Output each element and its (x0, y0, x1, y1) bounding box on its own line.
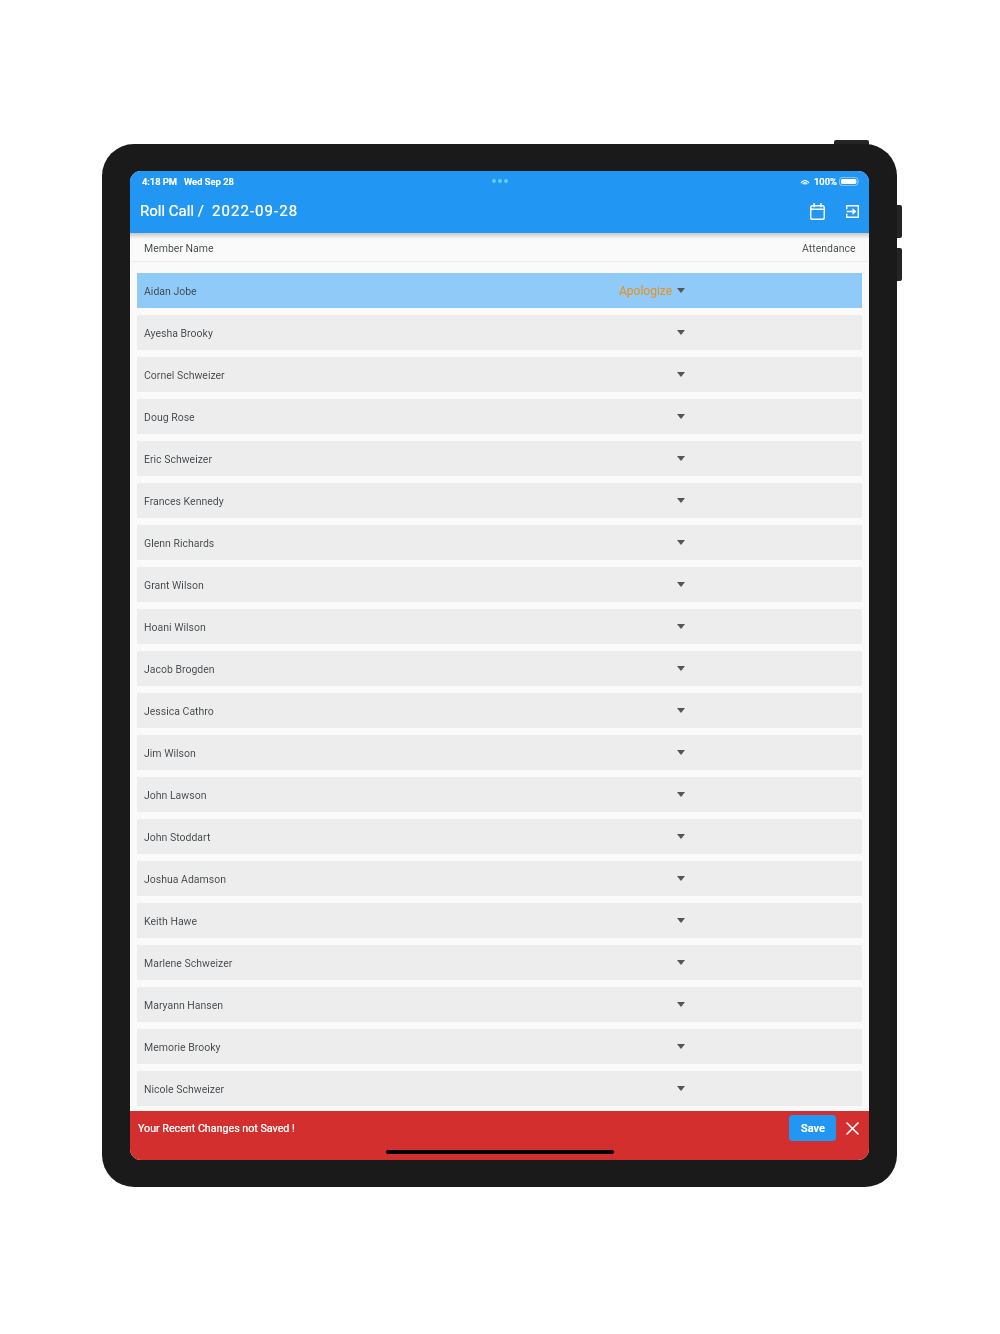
button[interactable]: John Lawson (137, 777, 862, 812)
button[interactable]: John Stoddart (137, 819, 862, 854)
staticText: Grant Wilson (144, 579, 204, 591)
staticText: Your Recent Changes not Saved ! (138, 1122, 295, 1135)
button[interactable]: Calendar (802, 196, 832, 226)
button[interactable]: Jim Wilson (137, 735, 862, 770)
button[interactable]: Select attendance for Hoani Wilson (613, 609, 693, 644)
button[interactable]: Select attendance for Glenn Richards (613, 525, 693, 560)
staticText: Frances Kennedy (144, 495, 224, 507)
button[interactable]: Logout (837, 196, 867, 226)
button[interactable]: Cornel Schweizer (137, 357, 862, 392)
button[interactable]: Ayesha Brooky (137, 315, 862, 350)
staticText: Joshua Adamson (144, 873, 226, 885)
button[interactable]: Grant Wilson (137, 567, 862, 602)
button[interactable]: Select attendance for Keith Hawe (613, 903, 693, 938)
button[interactable]: Glenn Richards (137, 525, 862, 560)
button[interactable]: Joshua Adamson (137, 861, 862, 896)
staticText: Nicole Schweizer (144, 1083, 225, 1095)
button[interactable]: Select attendance for Jacob Brogden (613, 651, 693, 686)
staticText: Member Name (144, 242, 214, 254)
staticText: Eric Schweizer (144, 453, 212, 465)
button[interactable]: Keith Hawe (137, 903, 862, 938)
staticText: Cornel Schweizer (144, 369, 225, 381)
button[interactable]: Frances Kennedy (137, 483, 862, 518)
staticText: Glenn Richards (144, 537, 215, 549)
button[interactable]: Dismiss (836, 1112, 869, 1144)
staticText: John Lawson (144, 789, 207, 801)
button[interactable]: Doug Rose (137, 399, 862, 434)
button[interactable]: Select attendance for Nicole Schweizer (613, 1071, 693, 1106)
staticText: Ayesha Brooky (144, 327, 213, 339)
staticText: Roll Call / (140, 202, 204, 220)
staticText: Hoani Wilson (144, 621, 206, 633)
button[interactable]: Select attendance for Grant Wilson (613, 567, 693, 602)
button[interactable]: Marlene Schweizer (137, 945, 862, 980)
staticText: Attendance (802, 242, 856, 254)
staticText: 100% (814, 176, 837, 187)
button[interactable]: Jessica Cathro (137, 693, 862, 728)
button[interactable]: Select attendance for Jessica Cathro (613, 693, 693, 728)
button[interactable]: Maryann Hansen (137, 987, 862, 1022)
staticText: Apologize (619, 284, 673, 298)
staticText: Maryann Hansen (144, 999, 224, 1011)
staticText: Doug Rose (144, 411, 195, 423)
button[interactable]: Save (789, 1115, 836, 1141)
button[interactable]: Select attendance for John Lawson (613, 777, 693, 812)
staticText: 4:18 PM (142, 176, 178, 187)
staticText: 2022-09-28 (212, 202, 299, 220)
staticText: Keith Hawe (144, 915, 198, 927)
button[interactable]: Select attendance for Maryann Hansen (613, 987, 693, 1022)
staticText: Aidan Jobe (144, 285, 197, 297)
button[interactable]: Nicole Schweizer (137, 1071, 862, 1106)
button[interactable]: Eric Schweizer (137, 441, 862, 476)
staticText: Jim Wilson (144, 747, 196, 759)
button[interactable]: Select attendance for Ayesha Brooky (613, 315, 693, 350)
button[interactable]: Select attendance for Doug Rose (613, 399, 693, 434)
button[interactable]: Select attendance for John Stoddart (613, 819, 693, 854)
staticText: Save (801, 1122, 825, 1135)
button[interactable]: Select attendance for Eric Schweizer (613, 441, 693, 476)
button[interactable]: Select attendance for Joshua Adamson (613, 861, 693, 896)
button[interactable]: Hoani Wilson (137, 609, 862, 644)
staticText: Jessica Cathro (144, 705, 214, 717)
button[interactable]: Memorie Brooky (137, 1029, 862, 1064)
staticText: John Stoddart (144, 831, 211, 843)
button[interactable]: Select attendance for Marlene Schweizer (613, 945, 693, 980)
button[interactable]: Select attendance for Frances Kennedy (613, 483, 693, 518)
button[interactable]: Apologize (613, 273, 693, 308)
staticText: Marlene Schweizer (144, 957, 233, 969)
button[interactable]: Aidan Jobe (137, 273, 862, 308)
staticText: Wed Sep 28 (184, 176, 234, 187)
staticText: Jacob Brogden (144, 663, 215, 675)
button[interactable]: Select attendance for Memorie Brooky (613, 1029, 693, 1064)
button[interactable]: Select attendance for Jim Wilson (613, 735, 693, 770)
staticText: Memorie Brooky (144, 1041, 221, 1053)
button[interactable]: Jacob Brogden (137, 651, 862, 686)
button[interactable]: Select attendance for Cornel Schweizer (613, 357, 693, 392)
